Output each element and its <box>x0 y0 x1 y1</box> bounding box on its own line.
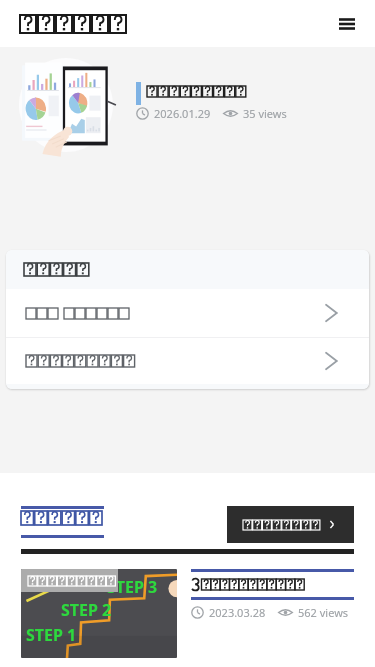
staticText: 562 views <box>298 605 349 620</box>
button[interactable] <box>227 506 354 543</box>
button[interactable]: STEP 1 <box>21 569 375 658</box>
button[interactable]: Menu <box>332 9 362 39</box>
staticText: 2026.01.29 <box>154 106 211 121</box>
button[interactable]: 2026.01.29 <box>0 47 375 250</box>
button[interactable]: App title <box>20 15 128 33</box>
button[interactable] <box>6 338 369 384</box>
staticText: STEP 2 <box>61 599 112 621</box>
button[interactable] <box>6 289 369 337</box>
staticText: 2023.03.28 <box>209 605 266 620</box>
staticText: STEP 3 <box>107 576 158 598</box>
staticText: STEP 1 <box>26 624 77 646</box>
staticText: 35 views <box>243 106 287 121</box>
